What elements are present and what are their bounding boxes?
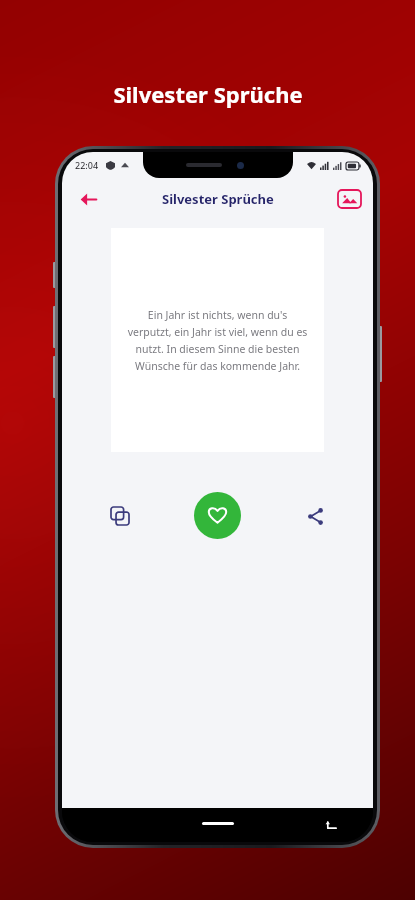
button[interactable]: Share (295, 496, 335, 536)
staticText: Silvester Sprüche (162, 190, 274, 208)
button[interactable]: Back (323, 817, 339, 833)
button[interactable]: Copy (100, 496, 140, 536)
button[interactable]: Back (72, 183, 104, 215)
staticText: Ein Jahr ist nichts, wenn du's verputzt,… (125, 308, 310, 373)
staticText: Silvester Sprüche (113, 79, 303, 109)
button[interactable]: Image (338, 190, 361, 208)
button[interactable]: Favorite (194, 492, 241, 539)
button[interactable]: Ein Jahr ist nichts, wenn du's verputzt,… (111, 228, 324, 452)
staticText: 22:04 (75, 159, 99, 171)
